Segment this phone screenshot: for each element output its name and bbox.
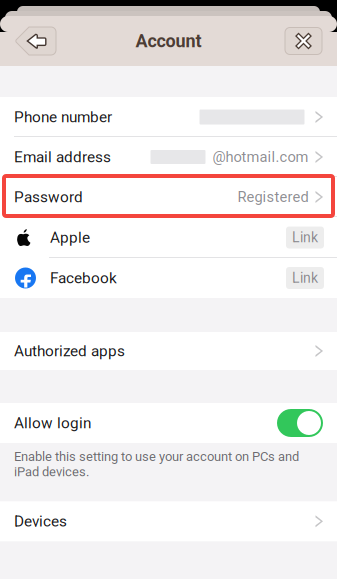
staticText: Account <box>135 30 201 52</box>
button[interactable]: Phone number <box>0 97 337 137</box>
staticText: Link <box>292 270 318 286</box>
staticText: Authorized apps <box>14 342 125 360</box>
button[interactable]: Email address <box>0 137 337 177</box>
staticText: Password <box>14 188 83 206</box>
button[interactable]: Devices <box>0 501 337 541</box>
staticText: Email address <box>14 148 111 166</box>
staticText: Allow login <box>14 414 91 432</box>
staticText: Registered <box>237 188 308 206</box>
staticText: Apple <box>50 228 90 246</box>
button[interactable]: Link <box>286 226 324 248</box>
button[interactable]: Password <box>0 177 337 217</box>
button[interactable]: Close <box>285 27 322 54</box>
staticText: @hotmail.com <box>212 148 308 166</box>
staticText: Enable this setting to use your account … <box>14 449 299 479</box>
staticText: Phone number <box>14 108 112 126</box>
staticText: Facebook <box>50 269 117 287</box>
button[interactable]: Authorized apps <box>0 332 337 370</box>
button[interactable]: Link <box>286 267 324 289</box>
button[interactable]: Allow login <box>277 409 323 437</box>
staticText: Link <box>292 229 318 246</box>
button[interactable]: Back <box>15 27 56 55</box>
staticText: Devices <box>14 512 67 530</box>
